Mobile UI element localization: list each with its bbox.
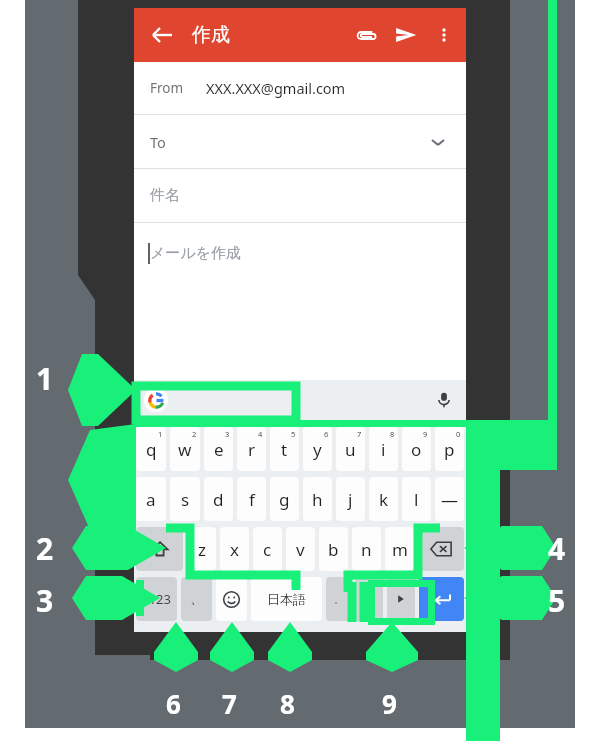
staticText: 8 [280,686,295,721]
button[interactable]: 3 [204,427,233,471]
button[interactable]: From [134,62,466,114]
staticText: u [345,438,356,461]
staticText: 8 [390,429,395,439]
staticText: m [392,538,408,561]
button[interactable]: More options [426,17,462,53]
button[interactable]: b [319,527,348,571]
staticText: To [150,132,166,152]
other: Expand recipients [420,124,456,160]
staticText: c [263,538,272,561]
staticText: l [414,488,419,511]
staticText: r [248,438,256,461]
staticText: p [444,438,455,461]
staticText: 1 [158,429,163,439]
staticText: w [178,438,192,461]
staticText: 5 [291,429,296,439]
button[interactable]: v [286,527,315,571]
button[interactable]: Google [144,388,168,412]
button[interactable]: Send [386,15,426,55]
staticText: 1 [36,358,54,399]
button[interactable]: m [385,527,414,571]
button[interactable]: n [352,527,381,571]
staticText: i [381,438,386,461]
staticText: XXX.XXX@gmail.com [206,78,346,98]
staticText: ?123 [143,590,171,608]
button[interactable]: s [170,477,200,521]
button[interactable]: — [435,477,464,521]
button[interactable]: 5 [270,427,299,471]
button[interactable]: 7 [336,427,365,471]
staticText: 5 [548,580,566,621]
staticText: h [312,488,323,511]
staticText: y [313,438,322,461]
staticText: j [348,488,353,511]
button[interactable]: To [134,115,466,168]
button[interactable]: Emoji [216,577,247,621]
staticText: e [214,438,224,461]
button[interactable]: 、 [181,577,212,621]
button[interactable]: c [253,527,282,571]
button[interactable]: 6 [303,427,332,471]
staticText: メールを作成 [150,244,242,263]
button[interactable]: j [336,477,365,521]
staticText: x [230,538,239,561]
staticText: 3 [225,429,230,439]
button[interactable]: h [303,477,332,521]
button[interactable]: z [187,527,216,571]
staticText: — [441,488,458,511]
button[interactable]: g [270,477,299,521]
staticText: v [296,538,305,561]
staticText: 0 [456,429,461,439]
staticText: s [181,488,190,511]
button[interactable]: k [369,477,398,521]
staticText: 7 [222,686,237,721]
button[interactable]: Back [142,15,182,55]
button[interactable]: 0 [435,427,464,471]
staticText: 9 [423,429,428,439]
staticText: 。 [334,594,343,605]
staticText: 2 [192,429,197,439]
button[interactable]: l [402,477,431,521]
staticText: g [279,488,290,511]
staticText: 6 [324,429,329,439]
button[interactable]: 9 [402,427,431,471]
staticText: t [281,438,288,461]
button[interactable]: Move cursor left [355,577,383,621]
staticText: 2 [36,528,54,569]
staticText: b [328,538,339,561]
button[interactable]: Backspace [418,527,464,571]
staticText: 4 [258,429,263,439]
button[interactable]: Attach file [346,15,386,55]
staticText: 日本語 [267,591,306,607]
button[interactable]: 。 [326,577,351,621]
button[interactable]: 4 [237,427,266,471]
button[interactable]: 日本語 [251,577,322,621]
button[interactable]: Voice input [430,386,458,414]
button[interactable]: a [136,477,166,521]
staticText: z [198,538,206,561]
button[interactable]: 件名 [134,169,466,222]
button[interactable]: 1 [136,427,166,471]
button[interactable]: d [204,477,233,521]
staticText: d [213,488,224,511]
button[interactable]: 8 [369,427,398,471]
staticText: k [379,488,389,511]
button[interactable]: f [237,477,266,521]
button[interactable]: ?123 [136,577,177,621]
staticText: 6 [166,686,181,721]
button[interactable]: x [220,527,249,571]
staticText: a [146,488,156,511]
staticText: 9 [382,686,397,721]
button[interactable]: Move cursor right [387,577,415,621]
staticText: 件名 [150,186,180,205]
staticText: q [146,438,157,461]
button[interactable]: Shift [136,527,183,571]
staticText: f [249,488,255,511]
staticText: o [411,438,422,461]
button[interactable]: Enter [419,577,464,621]
staticText: 3 [36,580,54,621]
button[interactable]: メールを作成 [134,223,466,283]
staticText: n [361,538,372,561]
staticText: 7 [357,429,362,439]
button[interactable]: 2 [170,427,200,471]
